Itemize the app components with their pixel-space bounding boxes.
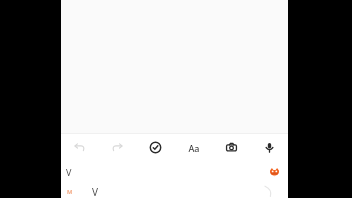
staticText: м [67,187,73,197]
button[interactable]: Camera [212,134,250,161]
button[interactable]: Account [268,166,281,179]
button[interactable]: Redo [98,134,136,161]
button[interactable]: Voice input [250,134,288,161]
button[interactable]: Undo [61,134,98,161]
button[interactable]: Text formatting [174,134,212,161]
button[interactable]: Checklist [136,134,174,161]
staticText: V [92,185,98,198]
staticText: Aa [188,142,200,154]
button[interactable]: V [66,166,72,178]
